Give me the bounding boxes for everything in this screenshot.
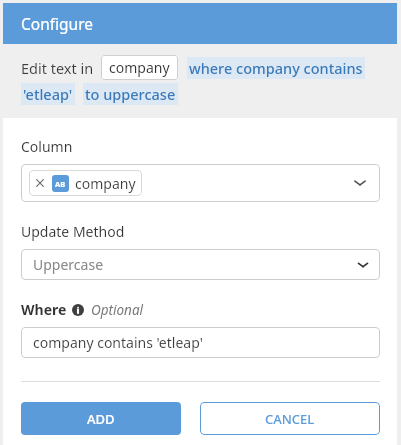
button[interactable]: More information <box>72 304 84 316</box>
staticText: Configure <box>21 13 94 34</box>
staticText: Optional <box>91 301 144 319</box>
staticText: Uppercase <box>33 255 104 274</box>
button[interactable]: Remove column <box>35 170 136 196</box>
staticText: AB <box>55 179 66 189</box>
staticText: to uppercase <box>85 84 176 104</box>
staticText: Edit text in <box>21 58 94 78</box>
staticText: Column <box>21 137 73 156</box>
button[interactable]: where company contains <box>189 58 363 78</box>
staticText: company <box>75 174 136 193</box>
other: Remove column <box>35 178 45 188</box>
button[interactable]: ADD <box>21 402 181 435</box>
staticText: company contains 'etleap' <box>33 333 203 352</box>
staticText: company <box>109 58 170 77</box>
staticText: CANCEL <box>265 410 315 428</box>
other: Open column list <box>352 175 368 191</box>
button[interactable]: company <box>109 58 170 77</box>
staticText: where company contains <box>189 58 363 78</box>
staticText: 'etleap' <box>23 84 73 104</box>
staticText: Where <box>21 300 67 319</box>
button[interactable]: Remove column <box>21 164 380 202</box>
button[interactable]: company contains 'etleap' <box>21 327 380 358</box>
button[interactable]: to uppercase <box>85 84 176 104</box>
button[interactable]: Uppercase <box>21 249 380 280</box>
button[interactable]: CANCEL <box>200 402 380 435</box>
staticText: Update Method <box>21 222 125 241</box>
button[interactable]: 'etleap' <box>23 84 73 104</box>
staticText: ADD <box>87 410 115 428</box>
